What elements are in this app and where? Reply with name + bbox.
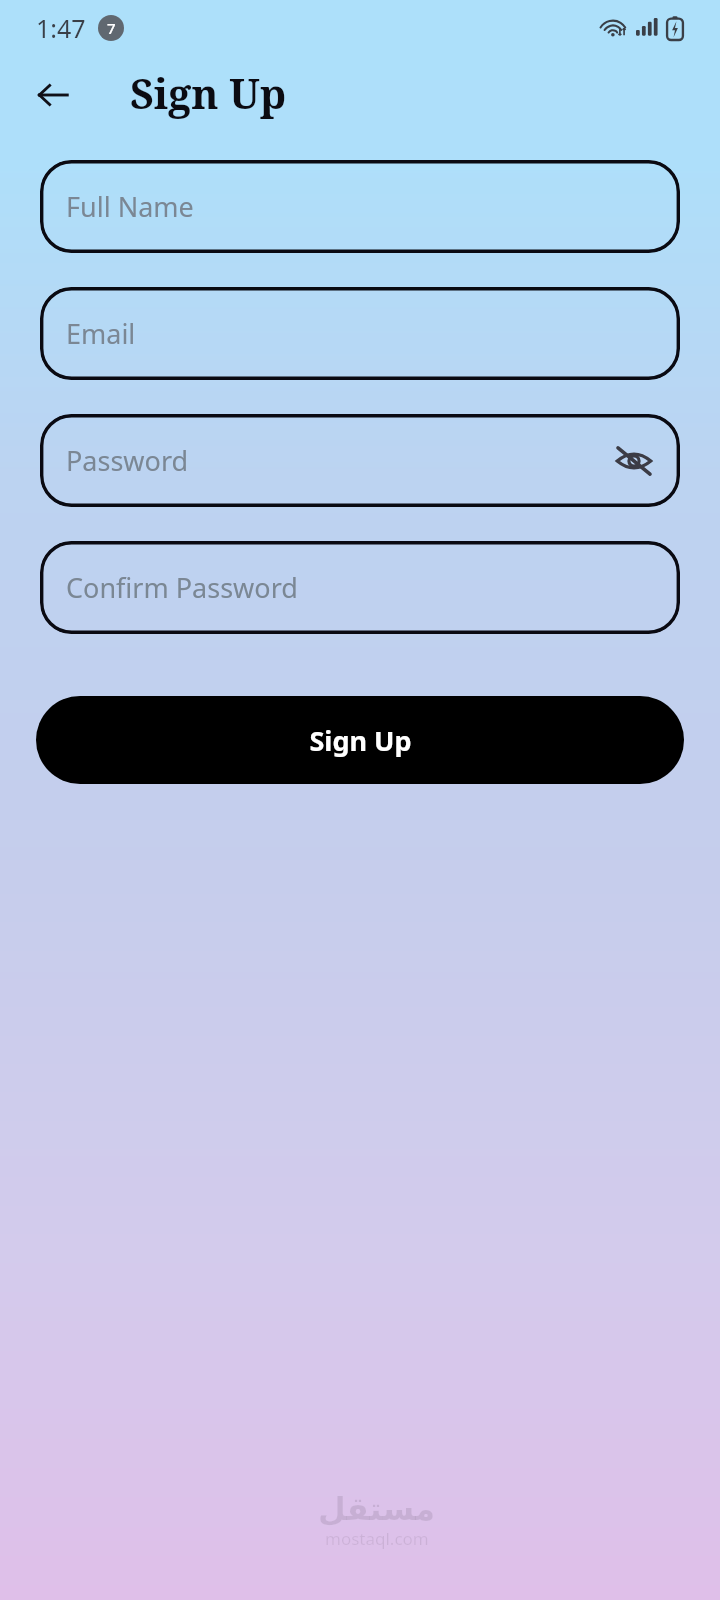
- staticText: 7: [107, 18, 116, 38]
- staticText: mostaql.com: [325, 1527, 429, 1550]
- staticText: Email: [66, 315, 136, 352]
- button[interactable]: Back: [26, 68, 80, 122]
- staticText: Confirm Password: [66, 569, 298, 606]
- staticText: Sign Up: [130, 65, 287, 121]
- staticText: Full Name: [66, 188, 194, 225]
- staticText: Password: [66, 442, 189, 479]
- staticText: Sign Up: [309, 722, 412, 759]
- button[interactable]: Toggle password visibility: [606, 433, 662, 489]
- button[interactable]: Full Name: [40, 160, 680, 253]
- button[interactable]: Sign Up: [36, 696, 684, 784]
- button[interactable]: Confirm Password: [40, 541, 680, 634]
- button[interactable]: Email: [40, 287, 680, 380]
- button[interactable]: Password: [40, 414, 680, 507]
- staticText: 1:47: [36, 11, 86, 45]
- staticText: مستقل: [318, 1490, 436, 1527]
